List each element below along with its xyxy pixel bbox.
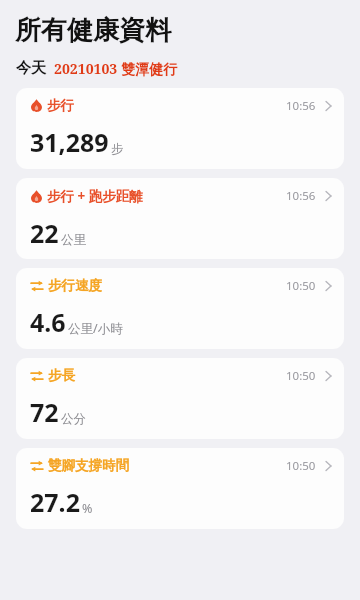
staticText: 22 xyxy=(30,216,59,250)
staticText: 今天 xyxy=(16,59,46,78)
staticText: 公里 xyxy=(61,232,86,248)
staticText: 步長 xyxy=(48,367,75,384)
staticText: 所有健康資料 xyxy=(15,14,171,47)
other: Pace xyxy=(30,369,44,383)
button[interactable]: Activity xyxy=(16,178,344,259)
other: Pace xyxy=(30,459,44,473)
other: Activity xyxy=(30,99,43,112)
button[interactable]: Pace xyxy=(16,358,344,439)
staticText: 公分 xyxy=(61,411,86,427)
staticText: 20210103 雙潭健行 xyxy=(54,59,177,78)
staticText: 31,289 xyxy=(30,125,109,159)
staticText: 10:50 xyxy=(286,278,316,294)
staticText: 步行速度 xyxy=(48,277,102,294)
staticText: 步行 + 跑步距離 xyxy=(47,187,143,205)
staticText: 步行 xyxy=(47,97,74,114)
staticText: 10:50 xyxy=(286,458,316,474)
button[interactable]: Activity xyxy=(16,88,344,169)
other: Activity xyxy=(30,190,43,203)
staticText: 27.2 xyxy=(30,485,80,519)
staticText: 4.6 xyxy=(30,305,66,339)
button[interactable]: Pace xyxy=(16,268,344,349)
button[interactable]: Pace xyxy=(16,448,344,529)
staticText: 10:56 xyxy=(286,188,316,204)
staticText: 10:50 xyxy=(286,368,316,384)
staticText: 72 xyxy=(30,395,59,429)
staticText: 10:56 xyxy=(286,98,316,114)
other: Pace xyxy=(30,279,44,293)
staticText: 步 xyxy=(111,141,124,157)
staticText: 公里/小時 xyxy=(68,320,123,337)
staticText: 雙腳支撐時間 xyxy=(48,457,129,474)
staticText: % xyxy=(82,500,93,517)
